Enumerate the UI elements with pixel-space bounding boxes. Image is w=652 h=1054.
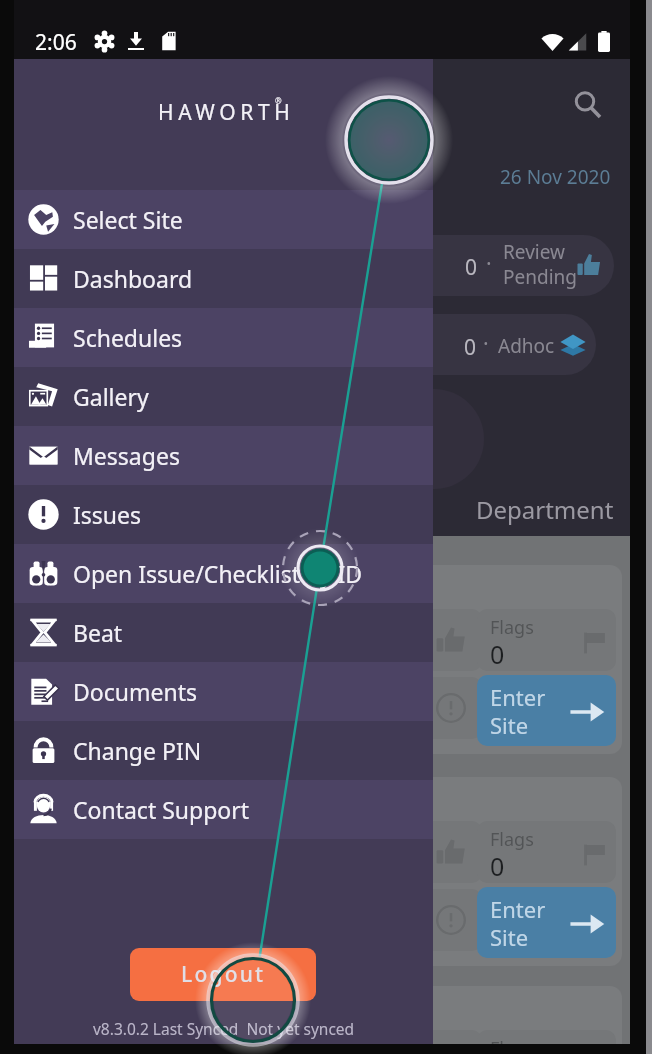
staticText: Issues [73, 499, 142, 530]
staticText: v8.3.0.2 Last Synced Not yet synced [93, 1018, 355, 1039]
button[interactable]: Beat [14, 603, 433, 662]
button[interactable]: Dashboard [14, 249, 433, 308]
button[interactable] [214, 235, 614, 296]
staticText: 0 [464, 333, 477, 362]
button[interactable]: Logout [130, 948, 316, 1001]
button[interactable]: Contact Support [14, 780, 433, 839]
staticText: Pending [503, 264, 577, 290]
staticText: Gallery [73, 381, 149, 412]
staticText: 26 Nov 2020 [500, 164, 611, 190]
button[interactable] [194, 314, 596, 375]
staticText: · [486, 249, 492, 278]
staticText: Flags [490, 827, 534, 852]
staticText: Flags [490, 615, 534, 640]
button[interactable]: Select Site [14, 190, 433, 249]
staticText: Select Site [73, 204, 183, 235]
staticText: Contact Support [73, 794, 250, 825]
staticText: Open Issue/Checklist by ID [73, 558, 363, 589]
staticText: 0 [490, 637, 505, 671]
button[interactable]: Open Issue/Checklist by ID [14, 544, 433, 603]
button[interactable]: Search [563, 80, 613, 130]
staticText: Logout [181, 960, 266, 989]
button[interactable]: Enter [477, 887, 616, 958]
staticText: Department [476, 493, 614, 526]
button[interactable]: Issues [14, 485, 433, 544]
staticText: Change PIN [73, 735, 202, 766]
staticText: ® [275, 95, 282, 106]
staticText: · [483, 329, 489, 358]
staticText: Beat [73, 617, 123, 648]
staticText: 0 [490, 849, 505, 883]
button[interactable]: Schedules [14, 308, 433, 367]
button[interactable]: Gallery [14, 367, 433, 426]
staticText: Adhoc [498, 333, 555, 359]
button[interactable]: Enter [477, 675, 616, 746]
staticText: Dashboard [73, 263, 193, 294]
staticText: 0 [465, 253, 478, 282]
button[interactable]: Change PIN [14, 721, 433, 780]
staticText: Site [490, 710, 529, 740]
staticText: Messages [73, 440, 180, 471]
staticText: Enter [490, 682, 546, 712]
staticText: Review [503, 239, 565, 265]
staticText: Schedules [73, 322, 183, 353]
staticText: Enter [490, 894, 546, 924]
button[interactable]: Messages [14, 426, 433, 485]
staticText: Flags [490, 1036, 534, 1044]
staticText: 2:06 [35, 28, 77, 57]
staticText: Documents [73, 676, 197, 707]
staticText: HAWORTH [158, 98, 295, 127]
button[interactable]: Documents [14, 662, 433, 721]
staticText: Site [490, 922, 529, 952]
